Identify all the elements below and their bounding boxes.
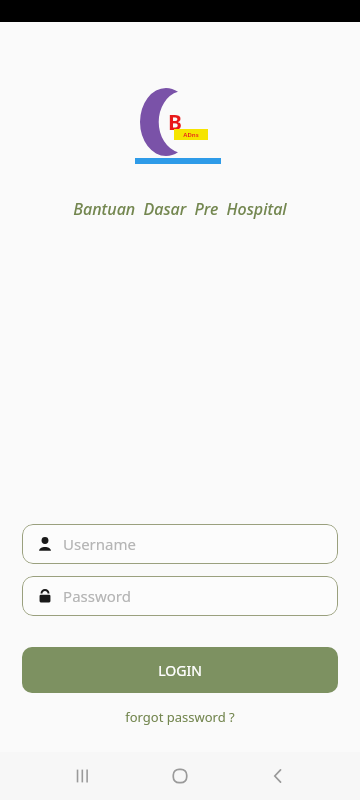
staticText: Password — [63, 586, 131, 606]
staticText: forgot password ? — [125, 708, 235, 726]
staticText: B — [168, 108, 182, 137]
staticText: Username — [63, 534, 136, 554]
staticText: Bantuan Dasar Pre Hospital — [73, 198, 287, 220]
staticText: LOGIN — [158, 661, 202, 680]
button[interactable]: Password — [22, 576, 338, 616]
button[interactable]: Back — [258, 756, 298, 796]
button[interactable]: Recent apps — [62, 756, 102, 796]
button[interactable]: Home — [160, 756, 200, 796]
button[interactable]: forgot password ? — [117, 705, 243, 729]
button[interactable]: LOGIN — [22, 647, 338, 693]
button[interactable]: Username — [22, 524, 338, 564]
staticText: ADns — [183, 131, 199, 139]
